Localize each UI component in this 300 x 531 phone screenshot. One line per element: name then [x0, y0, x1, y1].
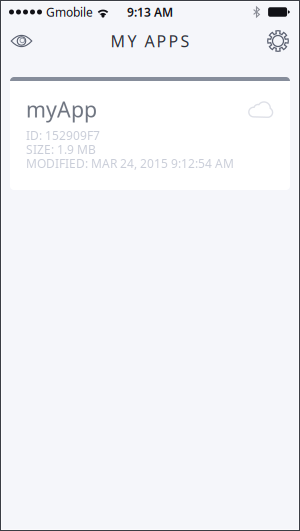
- staticText: MODIFIED: MAR 24, 2015 9:12:54 AM: [26, 155, 234, 171]
- button[interactable]: Preview: [2, 22, 41, 60]
- staticText: MY APPS: [110, 30, 189, 52]
- staticText: Gmobile: [46, 4, 93, 20]
- button[interactable]: Settings: [258, 22, 298, 60]
- button[interactable]: myApp: [10, 60, 290, 190]
- staticText: myApp: [26, 95, 97, 123]
- staticText: ID: 152909F7: [26, 127, 100, 143]
- staticText: 9:13 AM: [127, 4, 173, 20]
- staticText: SIZE: 1.9 MB: [26, 141, 96, 157]
